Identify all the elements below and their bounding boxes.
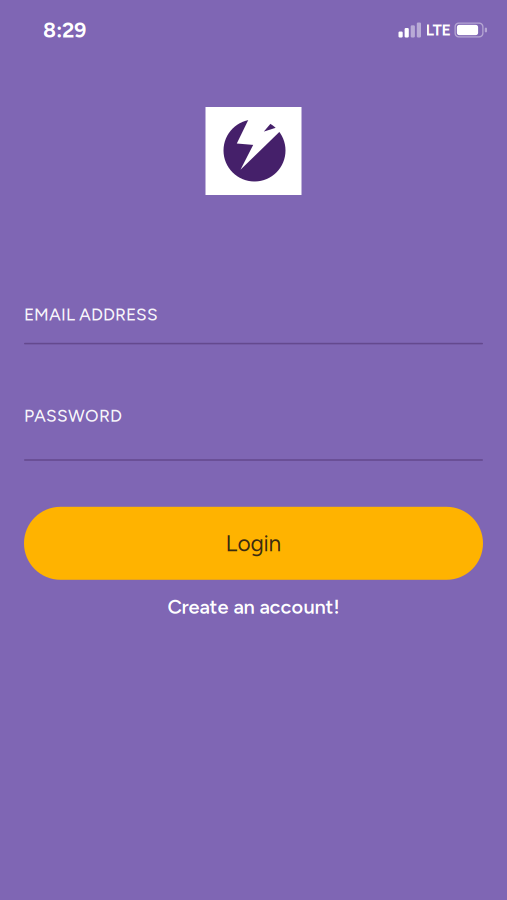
staticText: Login — [225, 530, 281, 557]
staticText: EMAIL ADDRESS — [24, 304, 158, 325]
button[interactable]: Login — [24, 507, 483, 580]
staticText: LTE — [425, 20, 450, 40]
staticText: 8:29 — [43, 17, 86, 43]
button[interactable]: Create an account! — [155, 589, 351, 625]
button[interactable]: EMAIL ADDRESS — [24, 304, 483, 344]
staticText: Create an account! — [167, 595, 339, 619]
button[interactable]: PASSWORD — [24, 405, 483, 461]
staticText: PASSWORD — [24, 405, 122, 426]
